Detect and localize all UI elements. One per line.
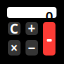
- staticText: ×: [10, 39, 18, 57]
- button[interactable]: ×: [8, 40, 20, 55]
- button[interactable]: Equals: [43, 22, 55, 55]
- staticText: +: [28, 20, 36, 37]
- staticText: −: [28, 39, 36, 57]
- button[interactable]: +: [25, 22, 38, 35]
- button[interactable]: −: [25, 40, 38, 55]
- button[interactable]: C: [8, 22, 20, 35]
- staticText: 0: [45, 7, 53, 25]
- staticText: C: [10, 20, 19, 37]
